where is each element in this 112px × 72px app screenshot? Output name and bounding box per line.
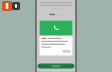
button[interactable] <box>37 63 74 68</box>
button[interactable]: Brand logo <box>0 0 20 11</box>
